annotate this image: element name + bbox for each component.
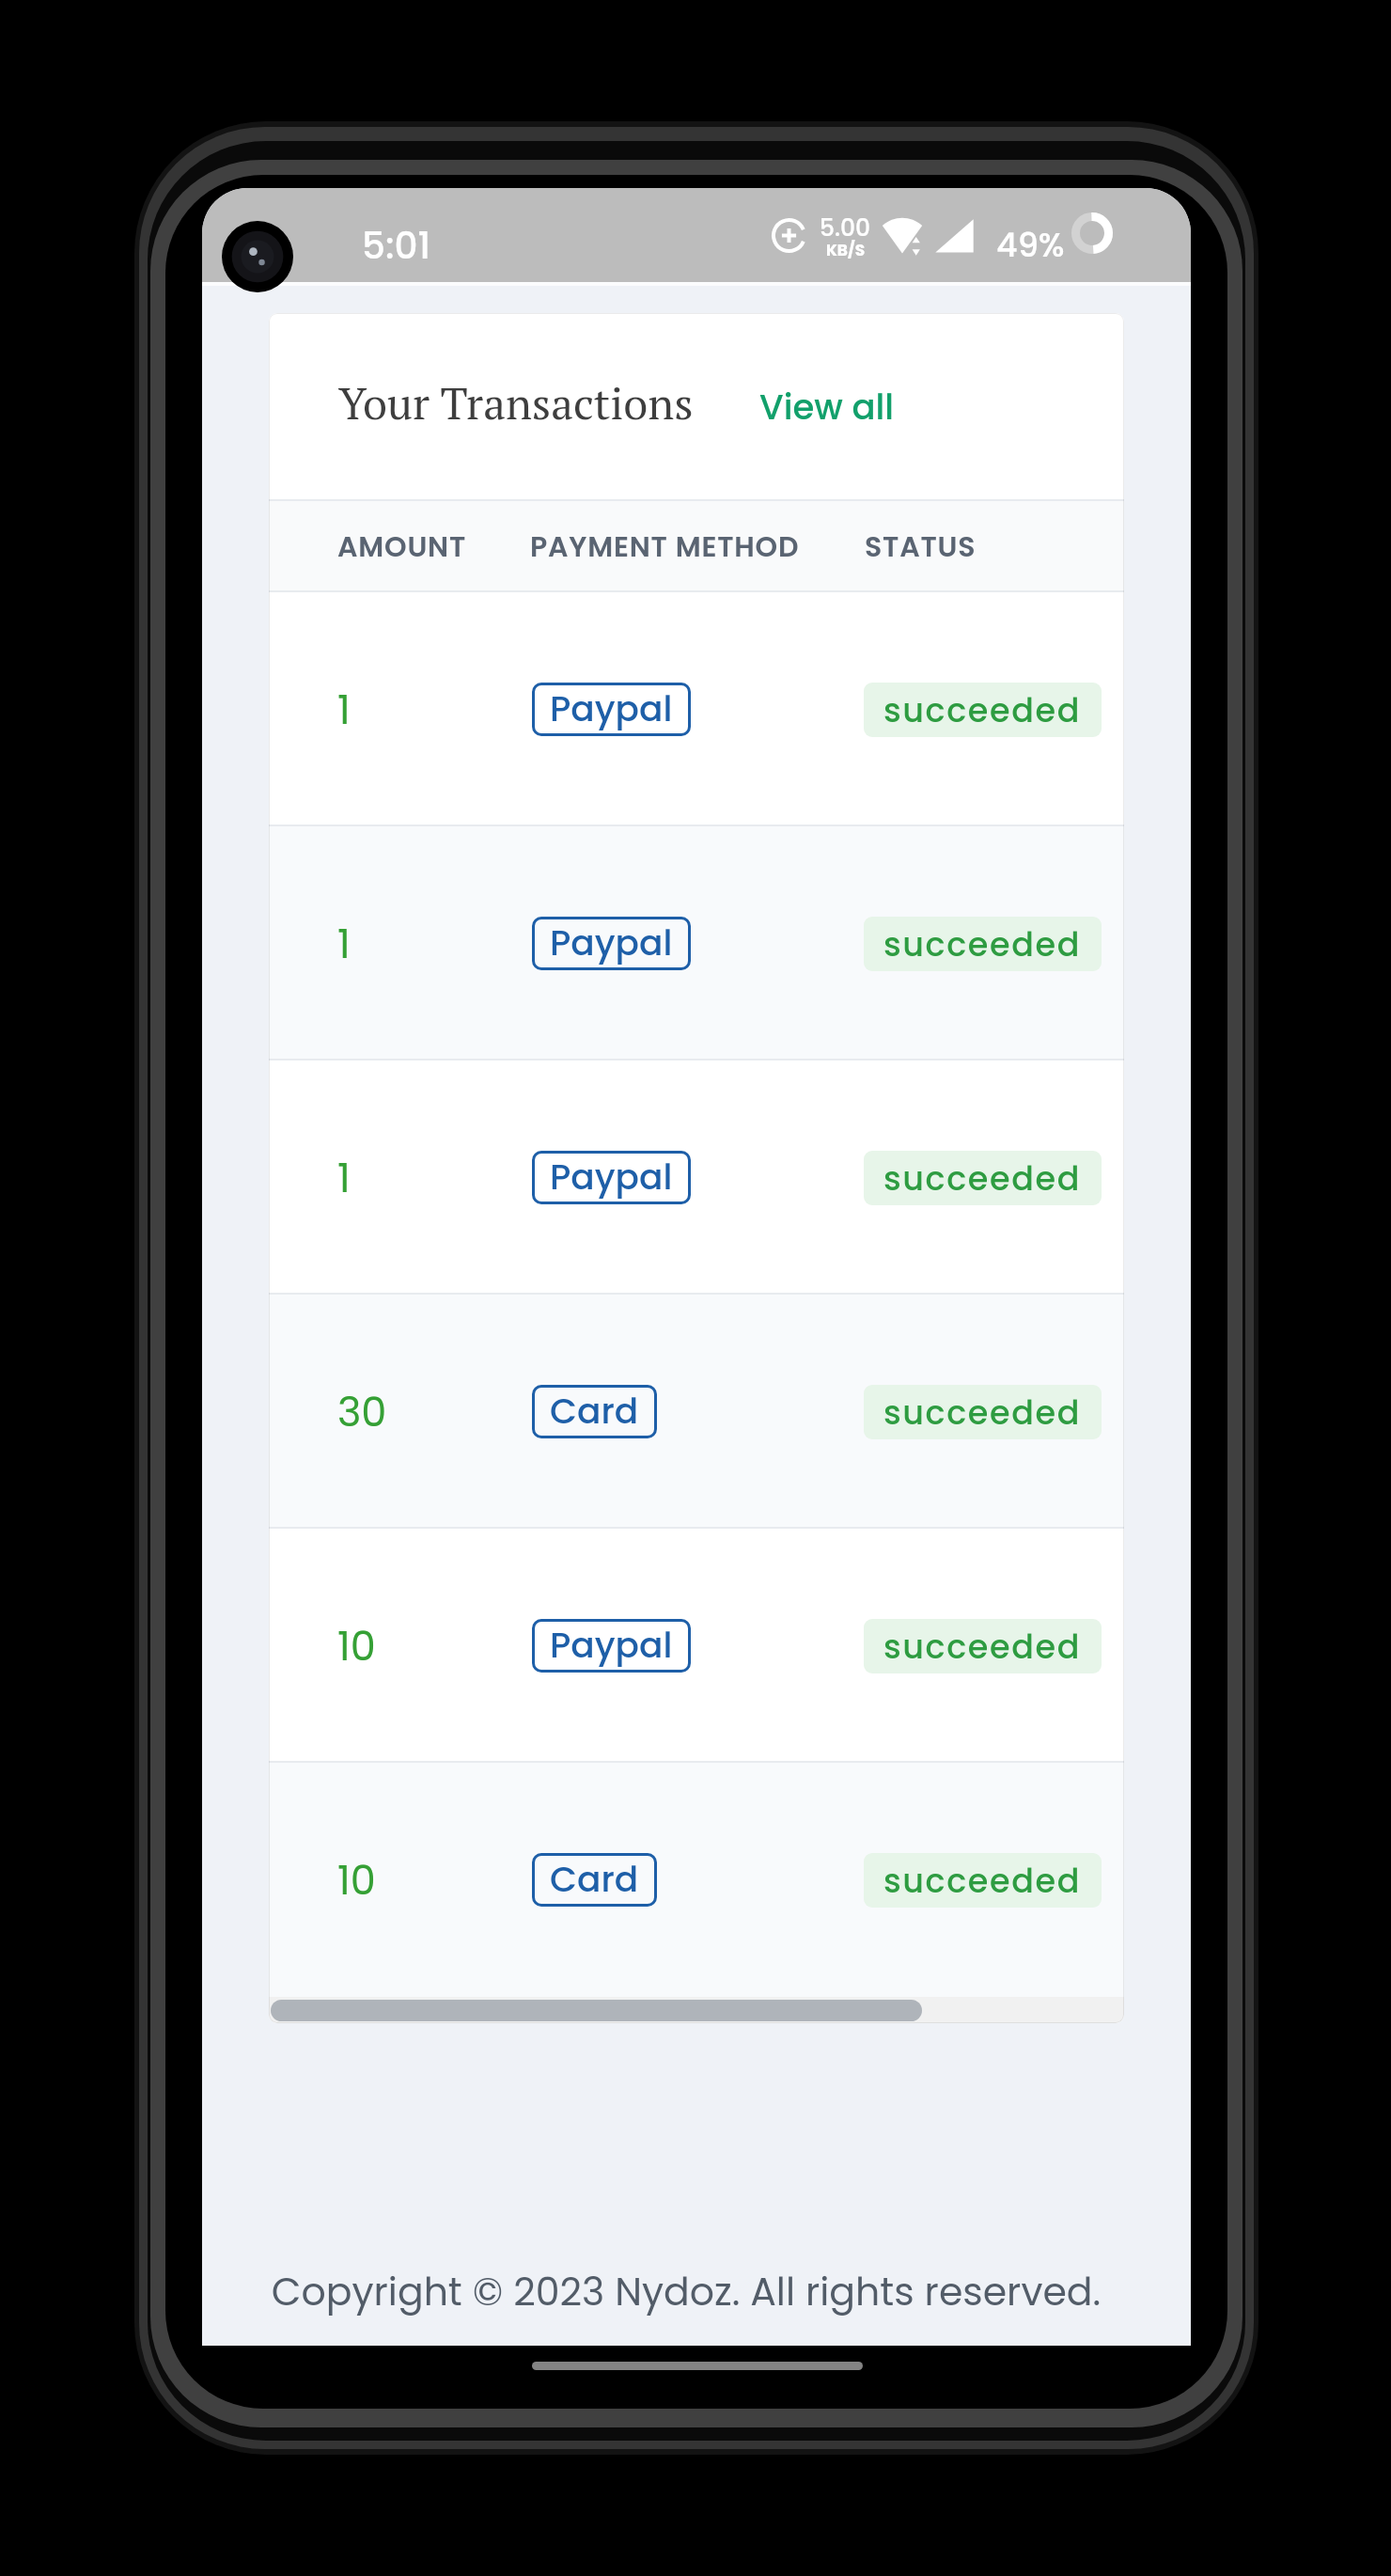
button[interactable]: Scroll table horizontally bbox=[271, 2000, 922, 2021]
staticText: Paypal bbox=[550, 684, 673, 734]
button[interactable]: 10 bbox=[269, 1763, 1124, 1997]
staticText: succeeded bbox=[883, 687, 1082, 733]
button[interactable]: 1 bbox=[269, 592, 1124, 826]
button[interactable]: View all bbox=[758, 379, 897, 435]
staticText: Card bbox=[550, 1855, 639, 1905]
staticText: succeeded bbox=[883, 1858, 1082, 1904]
staticText: View all bbox=[759, 383, 895, 432]
button[interactable]: 1 bbox=[269, 1060, 1124, 1295]
button[interactable]: 30 bbox=[269, 1295, 1124, 1529]
staticText: succeeded bbox=[883, 1624, 1082, 1670]
staticText: Your Transactions bbox=[338, 373, 694, 432]
staticText: succeeded bbox=[883, 1155, 1082, 1202]
staticText: Paypal bbox=[550, 1621, 673, 1671]
staticText: 30 bbox=[337, 1384, 387, 1440]
staticText: PAYMENT METHOD bbox=[530, 527, 800, 567]
staticText: KB/S bbox=[826, 239, 866, 261]
button[interactable]: 10 bbox=[269, 1529, 1124, 1763]
staticText: 1 bbox=[337, 1150, 351, 1206]
staticText: 10 bbox=[337, 1618, 376, 1674]
staticText: succeeded bbox=[883, 1390, 1082, 1436]
staticText: STATUS bbox=[865, 527, 977, 567]
staticText: Copyright © 2023 Nydoz. All rights reser… bbox=[202, 2265, 1180, 2318]
staticText: AMOUNT bbox=[337, 527, 467, 567]
staticText: 5:01 bbox=[362, 220, 431, 272]
staticText: 10 bbox=[337, 1852, 376, 1908]
staticText: 49% bbox=[996, 222, 1065, 268]
staticText: 1 bbox=[337, 682, 351, 738]
staticText: 1 bbox=[337, 916, 351, 972]
staticText: Paypal bbox=[550, 919, 673, 968]
staticText: Paypal bbox=[550, 1153, 673, 1202]
staticText: Card bbox=[550, 1387, 639, 1437]
staticText: succeeded bbox=[883, 921, 1082, 967]
staticText: 5.00 bbox=[820, 212, 871, 244]
button[interactable]: 1 bbox=[269, 826, 1124, 1060]
